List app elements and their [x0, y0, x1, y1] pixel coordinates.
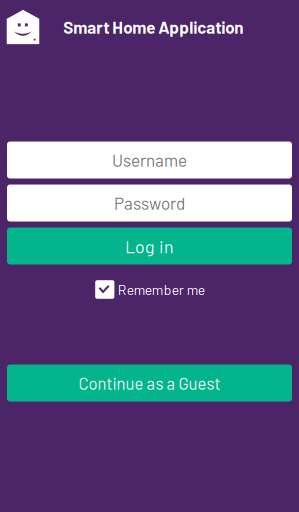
- button[interactable]: Username: [7, 141, 292, 178]
- staticText: Password: [114, 193, 185, 213]
- button[interactable]: Continue as a Guest: [7, 364, 292, 401]
- staticText: Continue as a Guest: [78, 373, 220, 393]
- staticText: Username: [112, 150, 187, 170]
- button[interactable]: Password: [7, 184, 292, 221]
- button[interactable]: Remember me: [95, 279, 205, 299]
- staticText: Log in: [125, 235, 174, 257]
- staticText: Smart Home Application: [63, 17, 243, 37]
- staticText: Remember me: [118, 281, 205, 298]
- button[interactable]: Log in: [7, 227, 292, 264]
